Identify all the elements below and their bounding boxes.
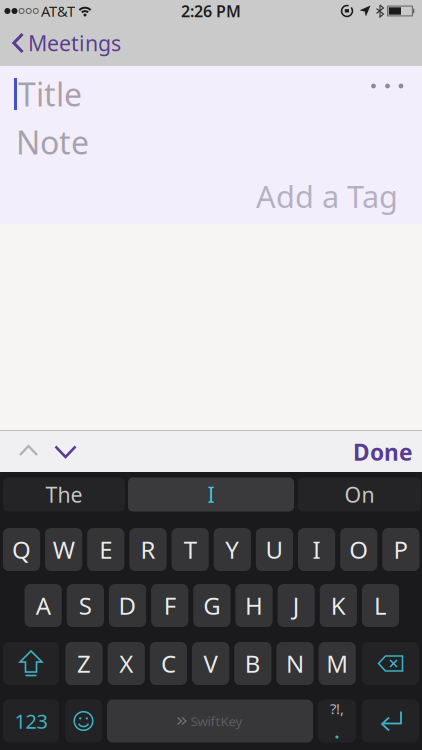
button[interactable]: Z (65, 642, 103, 685)
staticText: 123 (14, 708, 47, 734)
staticText: Z (77, 648, 91, 679)
button[interactable]: I (128, 477, 294, 511)
button[interactable]: Back (0, 27, 130, 59)
button[interactable]: X (108, 642, 145, 685)
staticText: J (293, 590, 300, 621)
button[interactable]: B (234, 642, 271, 685)
button[interactable]: H (235, 584, 273, 627)
staticText: AT&T (41, 1, 75, 21)
staticText: Done (353, 437, 413, 467)
button[interactable]: The (3, 477, 125, 511)
staticText: W (53, 534, 75, 565)
button[interactable]: Emoji (65, 699, 102, 742)
button[interactable]: T (171, 528, 209, 571)
staticText: L (374, 590, 387, 621)
button[interactable]: O (340, 528, 377, 571)
staticText: H (245, 590, 263, 621)
staticText: The (45, 480, 82, 509)
button[interactable]: Y (214, 528, 251, 571)
staticText: On (344, 480, 374, 509)
button[interactable]: Title (18, 74, 138, 114)
staticText: U (265, 534, 283, 565)
button[interactable]: On (298, 477, 421, 511)
staticText: D (118, 590, 136, 621)
button[interactable]: Next field (47, 435, 85, 469)
staticText: Meetings (28, 29, 121, 57)
button[interactable]: A (25, 584, 62, 627)
button[interactable]: W (45, 528, 82, 571)
staticText: X (119, 648, 133, 679)
button[interactable]: Add a Tag (218, 180, 398, 212)
staticText: V (204, 648, 218, 679)
staticText: N (286, 648, 304, 679)
button[interactable]: F (151, 584, 188, 627)
button[interactable]: ?!, (318, 699, 356, 742)
button[interactable]: G (193, 584, 230, 627)
button[interactable]: V (192, 642, 229, 685)
button[interactable]: Return (362, 699, 419, 742)
button[interactable]: R (129, 528, 167, 571)
staticText: M (326, 648, 348, 679)
staticText: Title (18, 73, 82, 115)
button[interactable]: Delete (362, 642, 419, 685)
button[interactable]: L (362, 584, 399, 627)
staticText: G (203, 590, 220, 621)
staticText: B (245, 648, 261, 679)
staticText: P (393, 534, 408, 565)
staticText: Add a Tag (256, 176, 398, 216)
staticText: C (161, 648, 176, 679)
button[interactable]: M (319, 642, 356, 685)
staticText: Y (225, 534, 239, 565)
button[interactable]: J (278, 584, 315, 627)
staticText: I (207, 480, 214, 509)
staticText: O (349, 534, 368, 565)
button[interactable]: Space (107, 699, 313, 742)
staticText: I (313, 534, 321, 565)
button[interactable]: C (150, 642, 187, 685)
button[interactable]: Done (353, 437, 413, 467)
staticText: . (334, 720, 339, 743)
button[interactable]: U (256, 528, 293, 571)
staticText: SwiftKey (190, 712, 242, 730)
button[interactable]: E (87, 528, 124, 571)
staticText: R (140, 534, 155, 565)
button[interactable]: K (320, 584, 357, 627)
staticText: K (331, 590, 346, 621)
button[interactable]: I (298, 528, 335, 571)
staticText: ?!, (330, 699, 344, 718)
button[interactable]: Q (3, 528, 40, 571)
button[interactable]: S (67, 584, 104, 627)
button[interactable]: Shift (3, 642, 59, 685)
staticText: 2:26 PM (181, 0, 241, 22)
staticText: Note (16, 121, 89, 163)
staticText: Q (12, 534, 31, 565)
button[interactable]: Previous field (12, 434, 46, 468)
button[interactable]: Note (16, 122, 136, 162)
staticText: T (184, 534, 197, 565)
button[interactable]: D (109, 584, 146, 627)
staticText: F (164, 590, 176, 621)
staticText: S (79, 590, 92, 621)
button[interactable]: 123 (3, 699, 59, 742)
button[interactable]: N (276, 642, 314, 685)
staticText: A (36, 590, 51, 621)
staticText: E (99, 534, 112, 565)
button[interactable]: P (382, 528, 419, 571)
button[interactable]: More (365, 71, 409, 101)
